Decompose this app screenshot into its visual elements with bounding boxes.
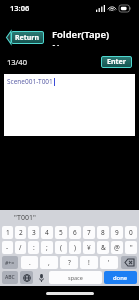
staticText: done (113, 274, 128, 282)
button[interactable]: ! (80, 256, 98, 269)
staticText: 13/40 (7, 57, 27, 67)
button[interactable]: ) (69, 241, 81, 254)
button[interactable]: Enter (101, 56, 132, 68)
button[interactable]: : (28, 241, 39, 254)
button[interactable]: ¥ (83, 241, 95, 254)
button[interactable]: Delete (121, 256, 137, 269)
staticText: ! (88, 258, 90, 267)
staticText: @ (114, 243, 120, 252)
staticText: space (68, 274, 83, 281)
staticText: 1 (6, 228, 10, 237)
staticText: ) (74, 243, 76, 252)
staticText: #+= (5, 259, 15, 266)
staticText: 3 (32, 228, 36, 237)
staticText: " (130, 243, 133, 252)
button[interactable]: done (104, 271, 137, 284)
staticText: ? (68, 258, 71, 267)
button[interactable]: 6 (69, 226, 81, 239)
button[interactable]: Change keyboard (20, 271, 33, 284)
button[interactable]: Scene001-T001 (4, 74, 135, 136)
staticText: 2 (19, 228, 23, 237)
staticText: . (29, 258, 31, 267)
button[interactable]: . (21, 256, 38, 269)
staticText: Folder(Tape) Name (52, 28, 133, 46)
button[interactable]: 3 (28, 226, 39, 239)
button[interactable]: " (125, 241, 137, 254)
staticText: 5 (59, 228, 63, 237)
staticText: ( (60, 243, 62, 252)
staticText: - (6, 243, 9, 252)
button[interactable]: 8 (97, 226, 109, 239)
button[interactable]: & (97, 241, 109, 254)
staticText: 8 (101, 228, 105, 237)
button[interactable]: #+= (2, 256, 18, 269)
button[interactable]: @ (111, 241, 123, 254)
staticText: 6 (73, 228, 77, 237)
staticText: 0 (129, 228, 133, 237)
button[interactable]: 4 (41, 226, 53, 239)
button[interactable]: / (15, 241, 26, 254)
staticText: Return (15, 33, 40, 43)
staticText: , (48, 258, 50, 267)
button[interactable]: 0 (125, 226, 137, 239)
button[interactable]: 5 (55, 226, 67, 239)
button[interactable]: space (49, 271, 102, 284)
staticText: ¥ (87, 243, 91, 252)
staticText: "T001" (14, 213, 36, 223)
staticText: Scene001-T001 (7, 77, 53, 86)
button[interactable]: 9 (111, 226, 123, 239)
button[interactable]: ( (55, 241, 67, 254)
button[interactable]: - (2, 241, 13, 254)
button[interactable]: ABC (2, 271, 18, 284)
button[interactable]: 7 (83, 226, 95, 239)
button[interactable]: Dictate (35, 271, 47, 284)
staticText: / (19, 243, 22, 252)
staticText: ABC (5, 274, 15, 281)
staticText: Enter (107, 57, 126, 67)
staticText: 13:06 (10, 3, 30, 13)
staticText: : (33, 243, 35, 252)
staticText: ; (46, 243, 48, 252)
staticText: 4 (45, 228, 49, 237)
staticText: 9 (115, 228, 119, 237)
button[interactable]: 1 (2, 226, 13, 239)
button[interactable]: Return (6, 31, 44, 44)
button[interactable]: ' (100, 256, 118, 269)
button[interactable]: 2 (15, 226, 26, 239)
button[interactable]: "T001" (0, 210, 139, 226)
staticText: & (101, 243, 106, 252)
button[interactable]: ? (60, 256, 78, 269)
staticText: ' (108, 258, 110, 267)
staticText: 7 (87, 228, 91, 237)
button[interactable]: , (40, 256, 58, 269)
button[interactable]: ; (41, 241, 53, 254)
